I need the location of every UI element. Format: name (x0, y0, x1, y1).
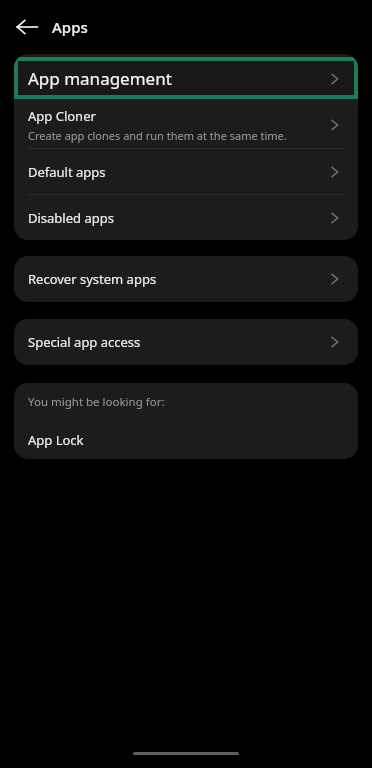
button[interactable]: App Cloner (14, 102, 358, 148)
button[interactable]: Disabled apps (14, 195, 358, 240)
button[interactable]: App management (18, 61, 354, 95)
staticText: App Cloner (28, 107, 96, 125)
staticText: Disabled apps (28, 209, 114, 227)
staticText: You might be looking for: (28, 394, 165, 410)
button[interactable]: Default apps (14, 149, 358, 194)
button[interactable]: Back (5, 5, 49, 49)
staticText: Default apps (28, 163, 106, 181)
button[interactable]: Special app access (14, 319, 358, 365)
staticText: Create app clones and run them at the sa… (28, 128, 287, 143)
button[interactable]: Recover system apps (14, 256, 358, 302)
staticText: Apps (52, 17, 88, 37)
staticText: Special app access (28, 333, 328, 351)
staticText: App management (28, 67, 328, 90)
staticText: Recover system apps (28, 270, 328, 288)
staticText: App Lock (28, 431, 84, 449)
button[interactable]: App Lock (14, 421, 358, 459)
